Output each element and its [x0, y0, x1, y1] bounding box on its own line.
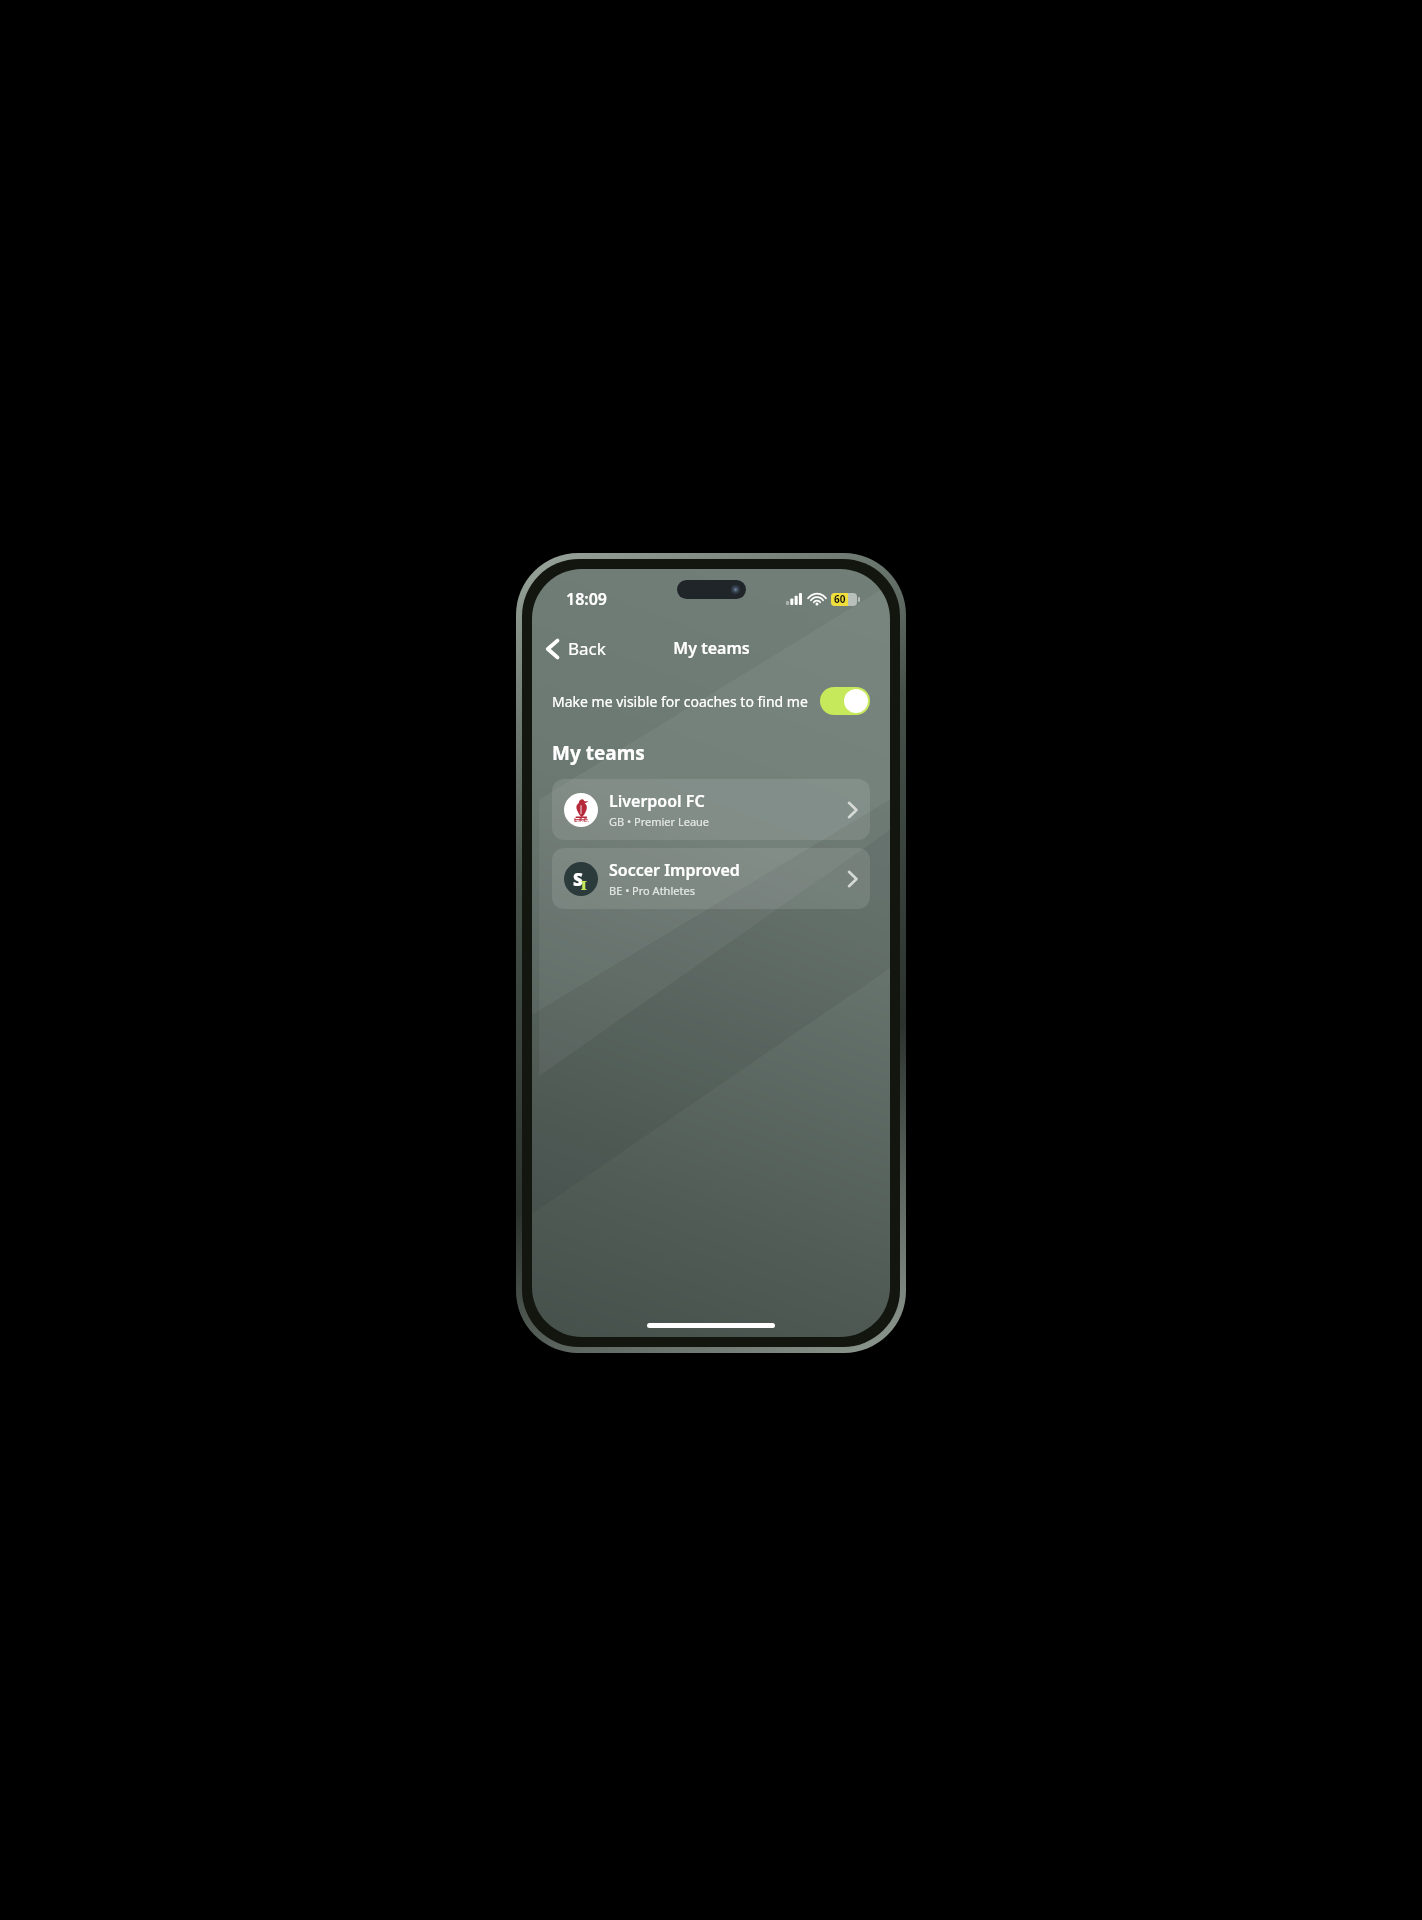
staticText: BE • Pro Athletes	[609, 883, 695, 898]
button[interactable]: Visible for coaches toggle	[820, 687, 870, 715]
staticText: Back	[568, 637, 606, 660]
staticText: L.F.C.	[574, 816, 589, 824]
staticText: Soccer Improved	[609, 859, 740, 881]
staticText: S	[573, 868, 583, 891]
staticText: Make me visible for coaches to find me	[552, 692, 808, 711]
staticText: My teams	[552, 740, 645, 766]
staticText: My teams	[673, 637, 750, 659]
staticText: 60	[834, 592, 846, 606]
staticText: 18:09	[566, 588, 608, 610]
staticText: I	[581, 876, 587, 894]
button[interactable]: S	[552, 848, 870, 909]
staticText: Liverpool FC	[609, 790, 705, 812]
staticText: GB • Premier Leaue	[609, 814, 710, 829]
button[interactable]: L.F.C.	[552, 779, 870, 840]
button[interactable]: Back	[532, 633, 616, 664]
button[interactable]: Make me visible for coaches to find me	[532, 681, 890, 721]
